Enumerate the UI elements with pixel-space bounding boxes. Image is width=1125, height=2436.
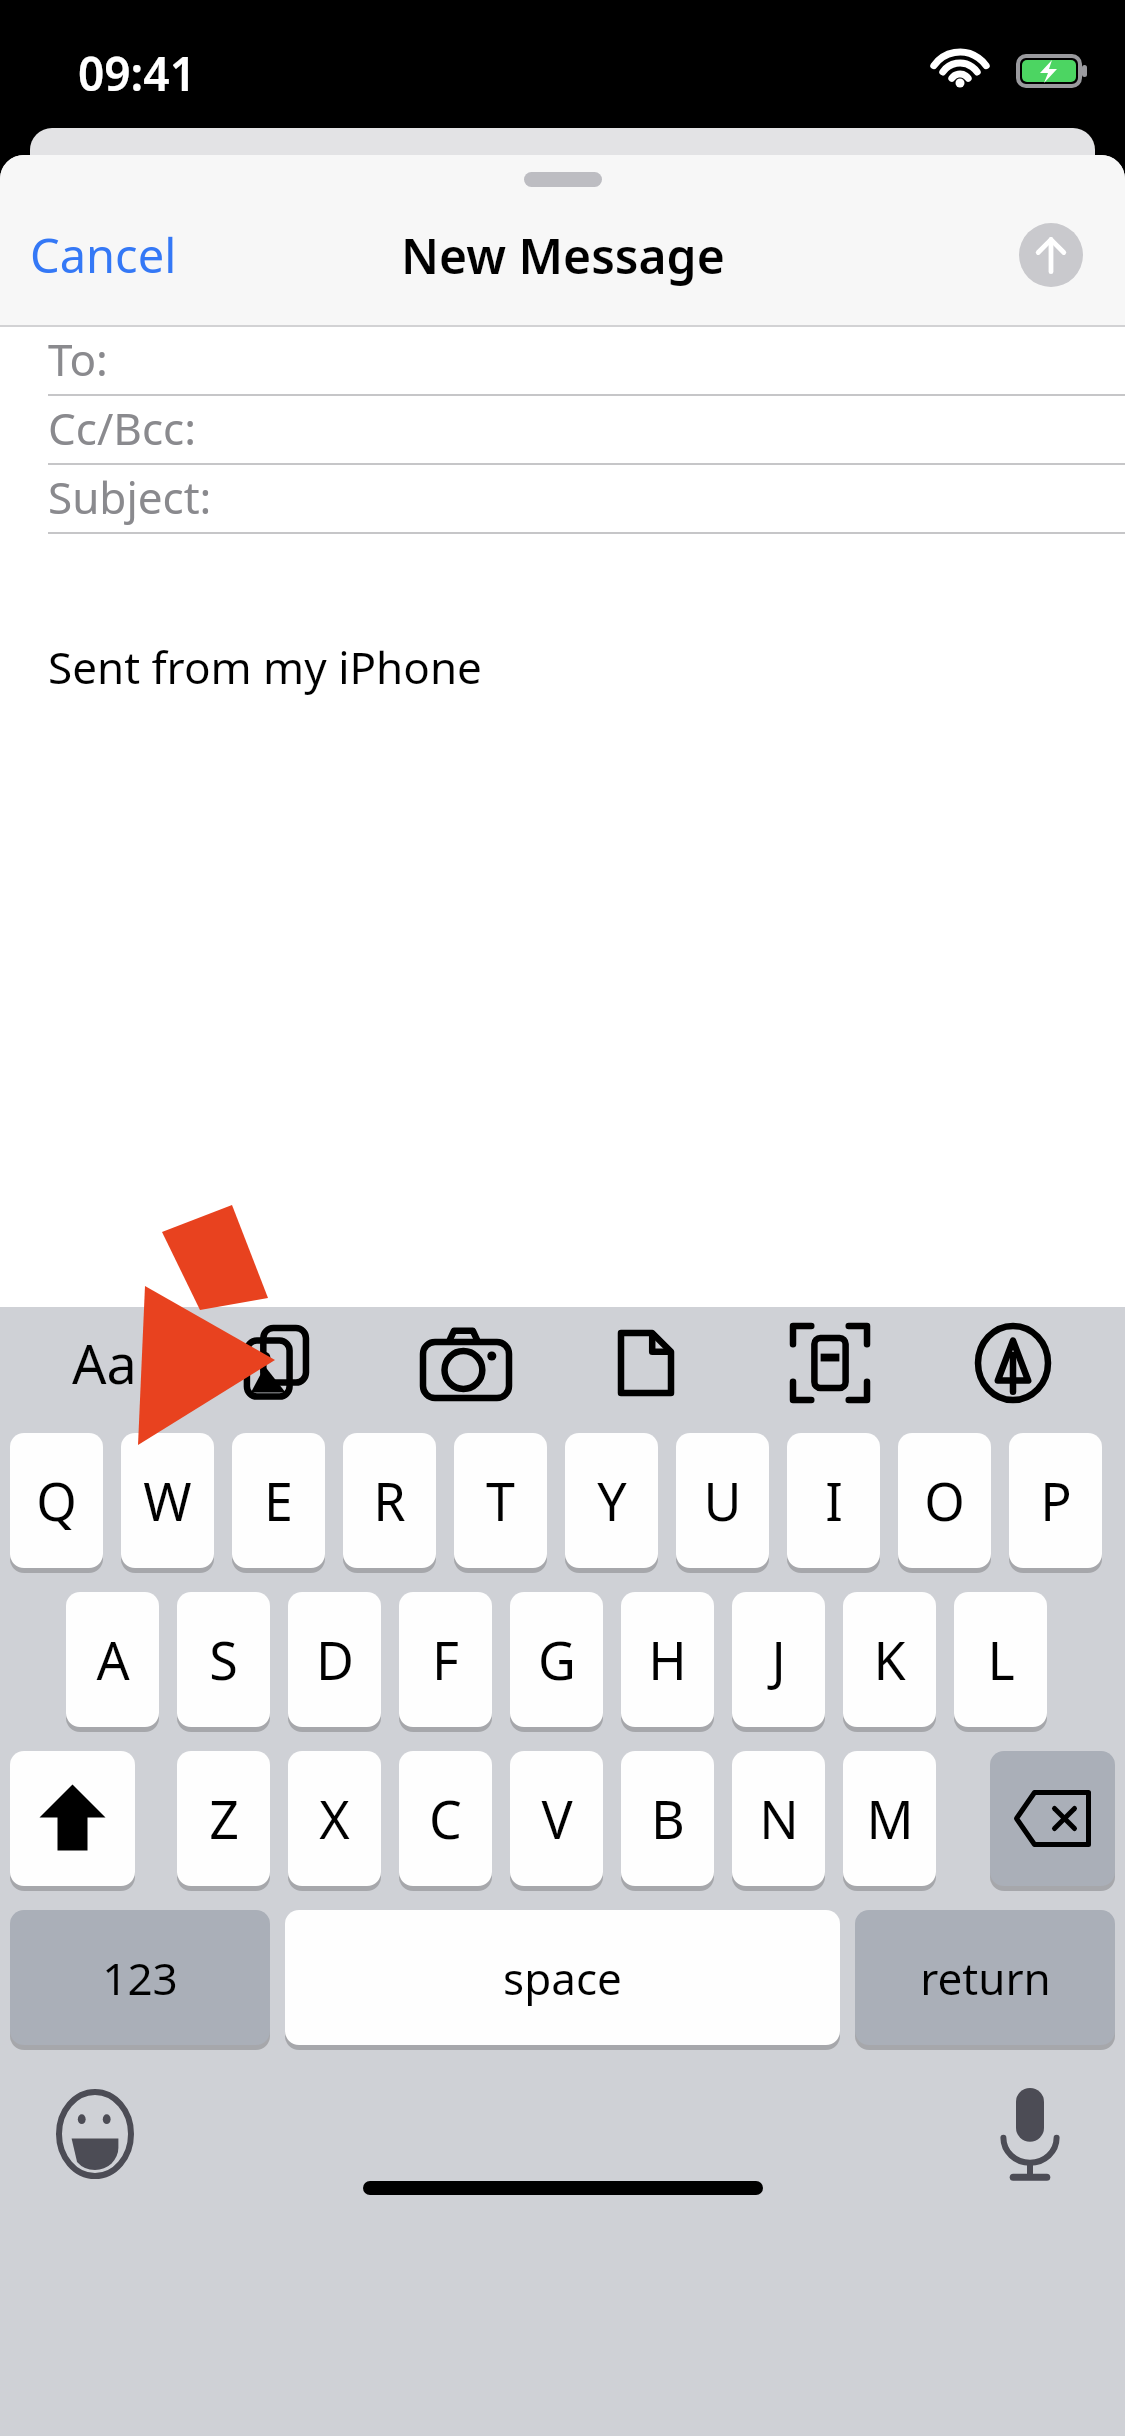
- button[interactable]: F: [399, 1592, 492, 1727]
- button[interactable]: space: [285, 1910, 840, 2045]
- staticText: L: [987, 1624, 1015, 1695]
- staticText: U: [703, 1465, 742, 1536]
- staticText: A: [96, 1624, 130, 1695]
- button[interactable]: O: [898, 1433, 991, 1568]
- staticText: Sent from my iPhone: [48, 637, 482, 697]
- button[interactable]: P: [1009, 1433, 1102, 1568]
- button[interactable]: Z: [177, 1751, 270, 1886]
- button[interactable]: V: [510, 1751, 603, 1886]
- button[interactable]: Markup: [951, 1321, 1075, 1405]
- staticText: K: [873, 1624, 906, 1695]
- staticText: Aa: [72, 1326, 137, 1400]
- button[interactable]: S: [177, 1592, 270, 1727]
- button[interactable]: X: [288, 1751, 381, 1886]
- staticText: W: [143, 1465, 192, 1536]
- staticText: X: [319, 1783, 350, 1854]
- button[interactable]: Subject:: [0, 465, 1125, 534]
- button[interactable]: Scan document: [768, 1321, 892, 1405]
- staticText: Subject:: [48, 467, 212, 527]
- button[interactable]: Backspace: [990, 1751, 1115, 1886]
- staticText: C: [429, 1783, 462, 1854]
- button[interactable]: W: [121, 1433, 214, 1568]
- button[interactable]: N: [732, 1751, 825, 1886]
- button[interactable]: B: [621, 1751, 714, 1886]
- button[interactable]: M: [843, 1751, 936, 1886]
- button[interactable]: Y: [565, 1433, 658, 1568]
- button[interactable]: Send: [1019, 223, 1083, 287]
- staticText: T: [486, 1465, 515, 1536]
- staticText: V: [541, 1783, 573, 1854]
- button[interactable]: C: [399, 1751, 492, 1886]
- button[interactable]: G: [510, 1592, 603, 1727]
- button[interactable]: Text formatting: [42, 1321, 166, 1405]
- button[interactable]: Sent from my iPhone: [0, 534, 1125, 1307]
- button[interactable]: Take photo: [404, 1321, 528, 1405]
- button[interactable]: Q: [10, 1433, 103, 1568]
- button[interactable]: Attach file: [584, 1321, 708, 1405]
- staticText: Cc/Bcc:: [48, 398, 196, 458]
- staticText: space: [503, 1948, 622, 2008]
- staticText: To:: [48, 329, 108, 389]
- staticText: E: [264, 1465, 293, 1536]
- staticText: return: [920, 1948, 1051, 2008]
- button[interactable]: Shift: [10, 1751, 135, 1886]
- staticText: New Message: [401, 223, 725, 288]
- staticText: O: [924, 1465, 965, 1536]
- staticText: G: [538, 1624, 576, 1695]
- staticText: 09:41: [78, 42, 196, 105]
- button[interactable]: E: [232, 1433, 325, 1568]
- staticText: N: [759, 1783, 799, 1854]
- button[interactable]: L: [954, 1592, 1047, 1727]
- button[interactable]: 123: [10, 1910, 270, 2045]
- staticText: J: [771, 1624, 786, 1695]
- staticText: P: [1040, 1465, 1072, 1536]
- staticText: M: [866, 1783, 914, 1854]
- staticText: B: [651, 1783, 685, 1854]
- staticText: I: [825, 1465, 843, 1536]
- button[interactable]: D: [288, 1592, 381, 1727]
- staticText: S: [209, 1624, 238, 1695]
- staticText: 123: [102, 1948, 178, 2008]
- staticText: Cancel: [30, 223, 177, 287]
- staticText: Q: [36, 1465, 77, 1536]
- button[interactable]: Cc/Bcc:: [0, 396, 1125, 465]
- staticText: H: [648, 1624, 687, 1695]
- staticText: Y: [597, 1465, 627, 1536]
- button[interactable]: Dictation: [975, 2079, 1085, 2189]
- button[interactable]: Cancel: [0, 207, 207, 303]
- button[interactable]: H: [621, 1592, 714, 1727]
- button[interactable]: I: [787, 1433, 880, 1568]
- staticText: F: [432, 1624, 459, 1695]
- staticText: D: [316, 1624, 354, 1695]
- button[interactable]: T: [454, 1433, 547, 1568]
- button[interactable]: Emoji: [40, 2079, 150, 2189]
- button[interactable]: R: [343, 1433, 436, 1568]
- button[interactable]: return: [855, 1910, 1115, 2045]
- staticText: Z: [209, 1783, 239, 1854]
- button[interactable]: K: [843, 1592, 936, 1727]
- button[interactable]: Photo library: [221, 1321, 345, 1405]
- button[interactable]: A: [66, 1592, 159, 1727]
- button[interactable]: U: [676, 1433, 769, 1568]
- staticText: R: [373, 1465, 406, 1536]
- button[interactable]: J: [732, 1592, 825, 1727]
- button[interactable]: To:: [0, 327, 1125, 396]
